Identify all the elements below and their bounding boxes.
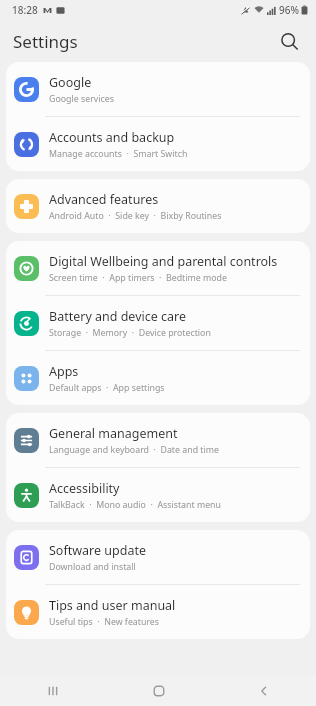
staticText: Default apps · App settings	[49, 382, 165, 394]
button[interactable]: Software update	[6, 530, 310, 584]
staticText: Tips and user manual	[49, 597, 176, 614]
button[interactable]: Search	[272, 24, 306, 58]
button[interactable]: Google	[6, 62, 310, 116]
staticText: Google	[49, 74, 92, 91]
staticText: General management	[49, 425, 178, 442]
staticText: Android Auto · Side key · Bixby Routines	[49, 210, 222, 222]
staticText: Download and install	[49, 561, 136, 573]
button[interactable]: Back	[211, 676, 316, 706]
button[interactable]: Tips and user manual	[6, 585, 310, 639]
staticText: Software update	[49, 542, 146, 559]
button[interactable]: Advanced features	[6, 179, 310, 233]
staticText: Google services	[49, 93, 114, 105]
button[interactable]: Home	[106, 676, 211, 706]
staticText: Apps	[49, 363, 79, 380]
staticText: TalkBack · Mono audio · Assistant menu	[49, 499, 221, 511]
button[interactable]: Accessibility	[6, 468, 310, 522]
staticText: Advanced features	[49, 191, 159, 208]
button[interactable]: Apps	[6, 351, 310, 405]
button[interactable]: General management	[6, 413, 310, 467]
button[interactable]: Recent apps	[0, 676, 106, 706]
staticText: Settings	[13, 30, 78, 53]
staticText: Screen time · App timers · Bedtime mode	[49, 272, 227, 284]
staticText: Accessibility	[49, 480, 120, 497]
button[interactable]: Digital Wellbeing and parental controls	[6, 241, 310, 295]
staticText: 96%	[279, 3, 299, 17]
staticText: Manage accounts · Smart Switch	[49, 148, 188, 160]
staticText: 18:28	[12, 3, 38, 17]
staticText: Digital Wellbeing and parental controls	[49, 253, 278, 270]
staticText: Useful tips · New features	[49, 616, 160, 628]
staticText: Language and keyboard · Date and time	[49, 444, 219, 456]
button[interactable]: Accounts and backup	[6, 117, 310, 171]
staticText: Battery and device care	[49, 308, 187, 325]
button[interactable]: Battery and device care	[6, 296, 310, 350]
staticText: Storage · Memory · Device protection	[49, 327, 211, 339]
staticText: Accounts and backup	[49, 129, 175, 146]
